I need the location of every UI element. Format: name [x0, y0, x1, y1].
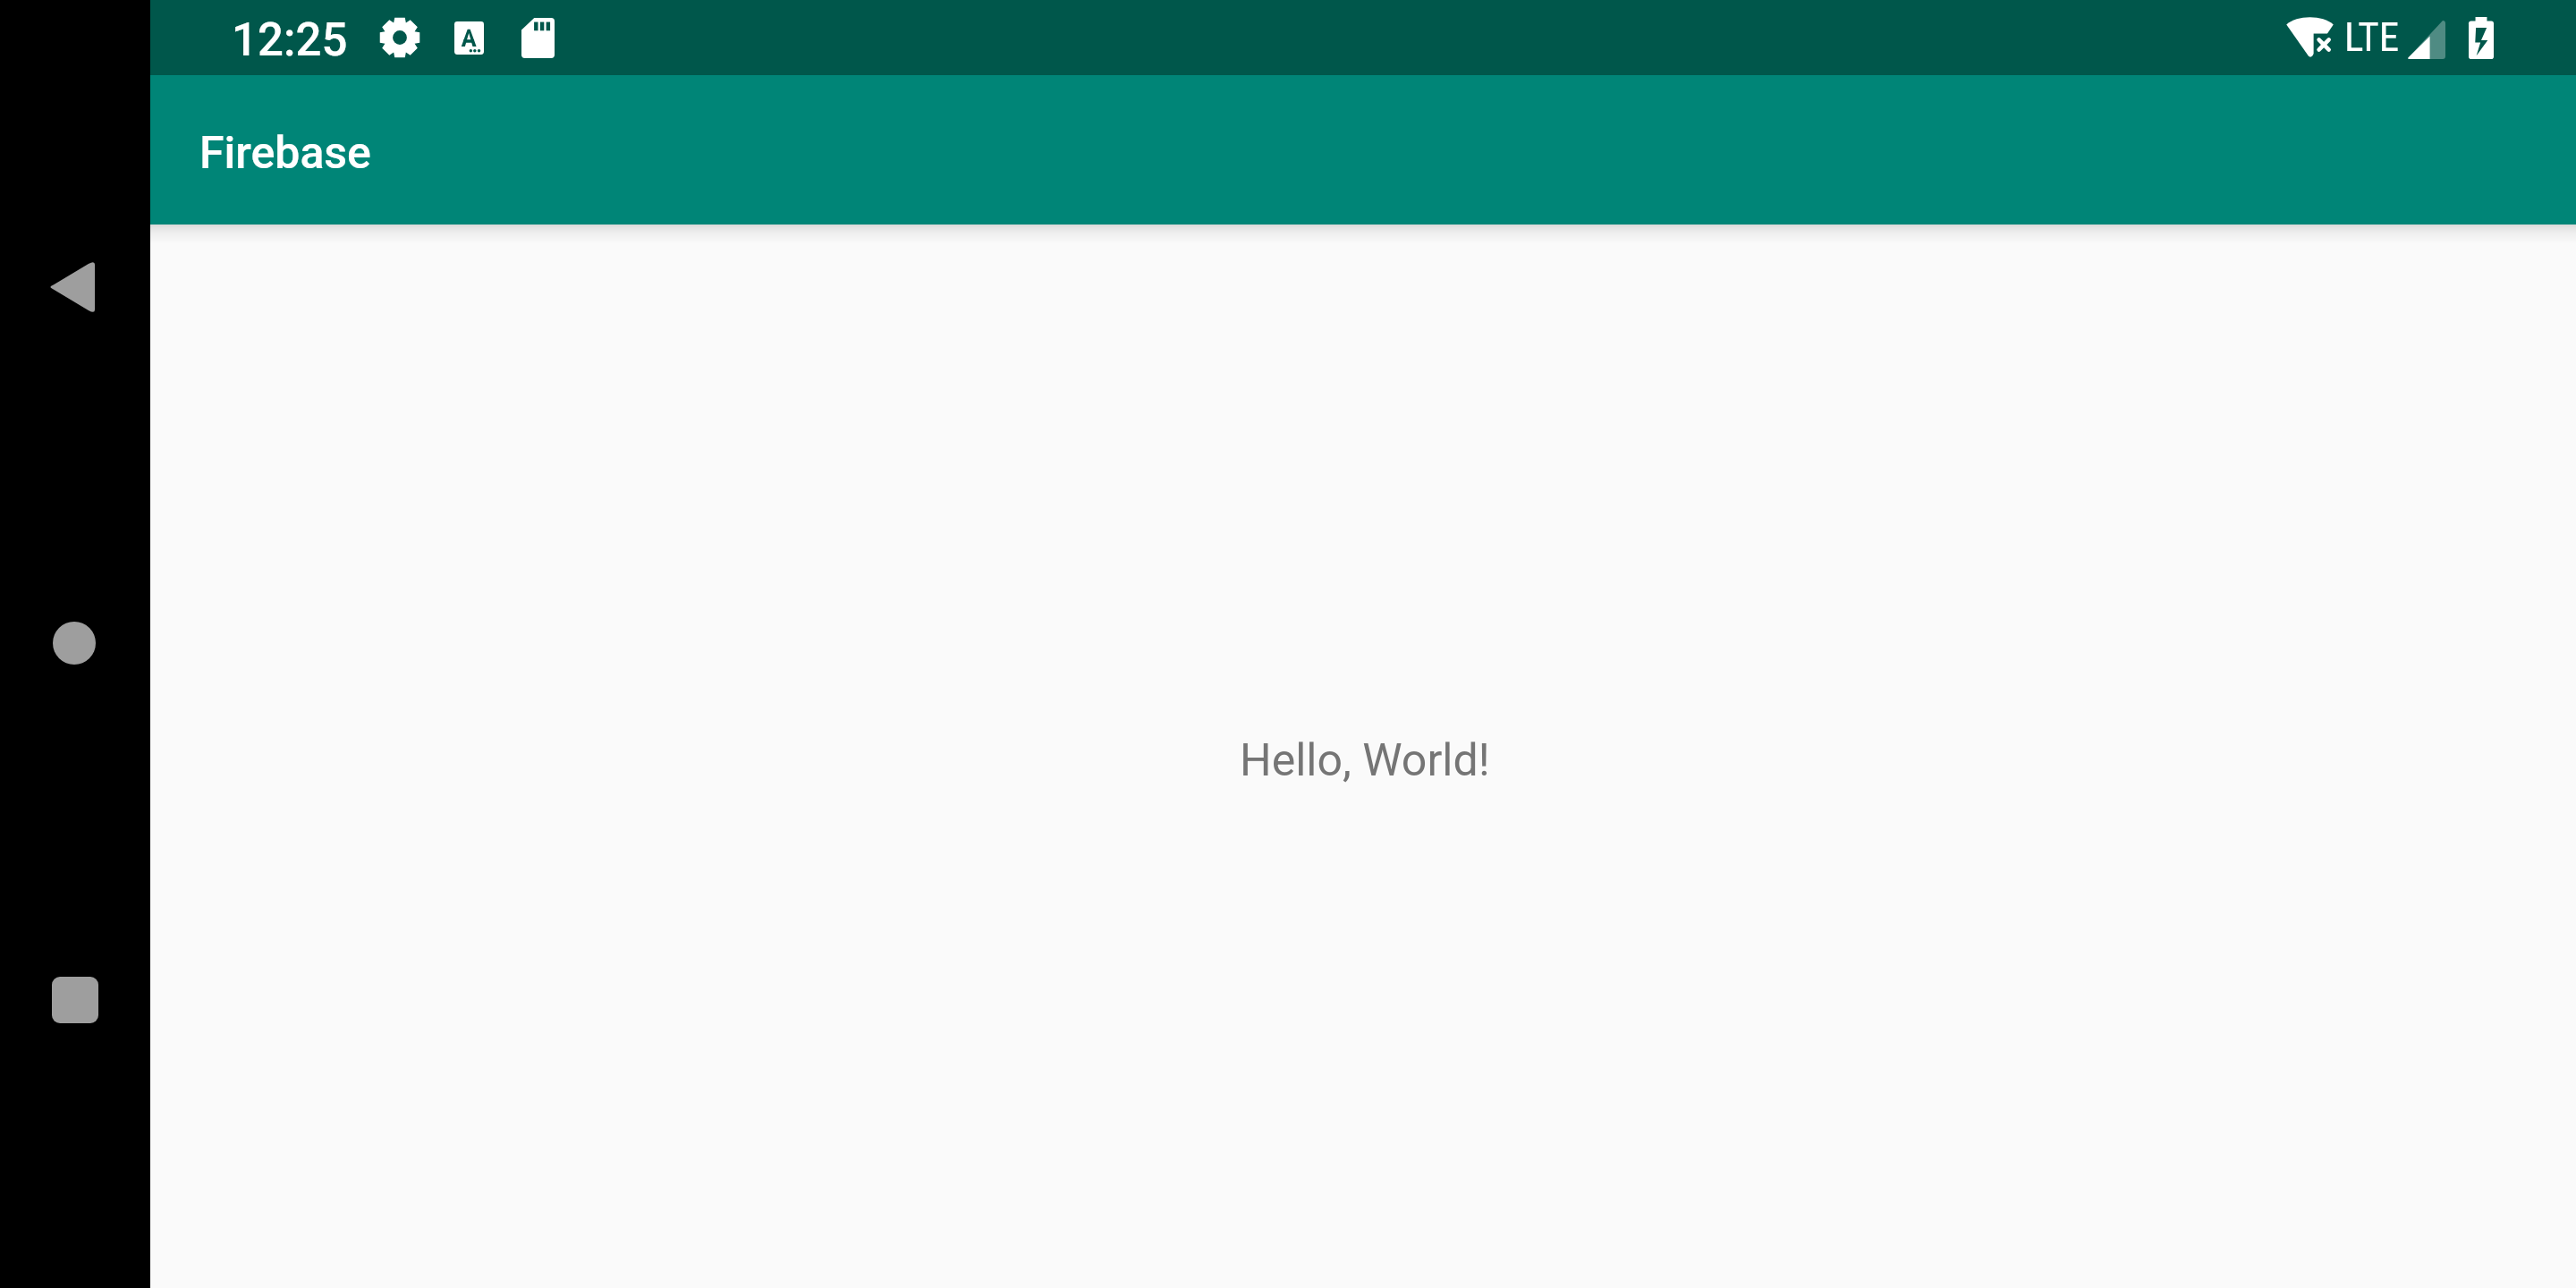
staticText: Firebase: [199, 127, 371, 180]
button[interactable]: Recent apps: [52, 977, 98, 1023]
other: Mobile signal strength: [2407, 21, 2445, 59]
other: App not responding: [454, 21, 484, 55]
other: Wi-Fi, no internet: [2286, 16, 2334, 57]
button[interactable]: Home: [53, 622, 96, 665]
other: SD card: [521, 18, 555, 58]
staticText: Hello, World!: [1240, 734, 1490, 787]
button[interactable]: Back: [47, 260, 95, 314]
staticText: LTE: [2344, 13, 2400, 61]
other: Battery charging: [2469, 17, 2494, 59]
other: Settings notification: [379, 17, 420, 58]
staticText: 12:25: [232, 13, 348, 67]
